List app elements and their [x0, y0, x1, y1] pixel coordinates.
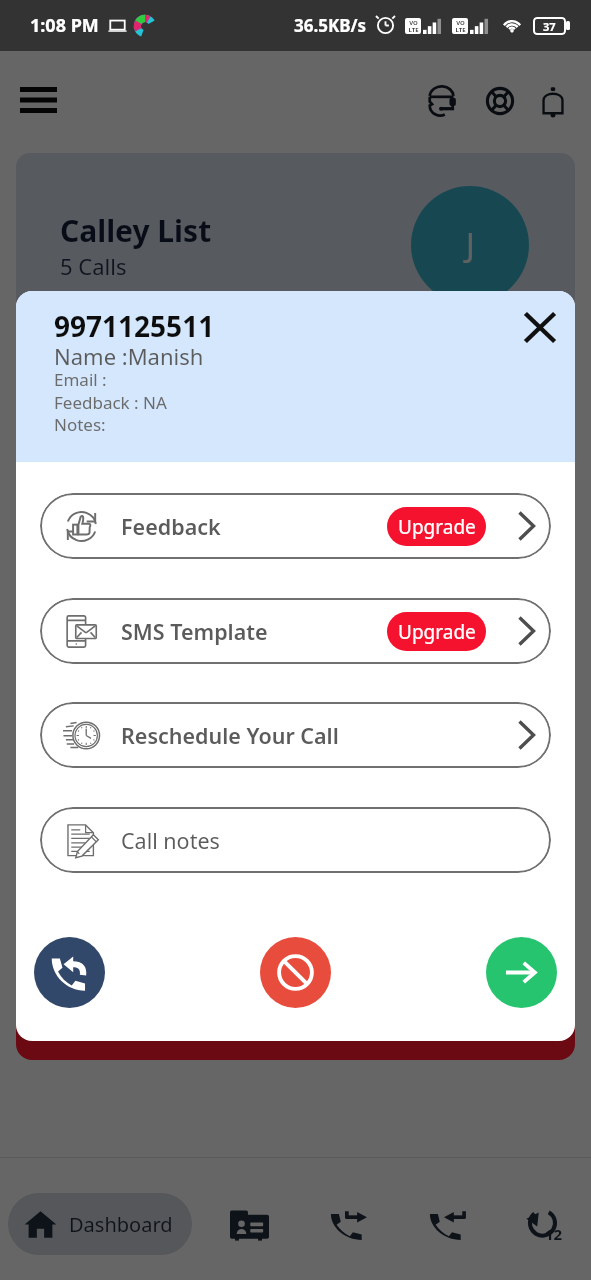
- staticText: Notes:: [54, 413, 106, 436]
- staticText: 37: [543, 19, 556, 34]
- button[interactable]: Incoming calls: [419, 1197, 474, 1252]
- staticText: VO LTE: [408, 19, 419, 34]
- staticText: Calley List: [60, 210, 212, 251]
- staticText: Name :Manish: [54, 341, 204, 371]
- button[interactable]: Feedback: [40, 493, 551, 559]
- staticText: 5 Calls: [60, 251, 127, 281]
- button[interactable]: Help: [474, 75, 526, 127]
- staticText: Call notes: [121, 826, 220, 855]
- button[interactable]: Outgoing calls: [320, 1197, 375, 1252]
- staticText: SMS Template: [121, 617, 268, 646]
- staticText: Feedback : NA: [54, 391, 167, 414]
- staticText: Upgrade: [398, 619, 476, 645]
- staticText: Upgrade: [398, 514, 476, 540]
- button[interactable]: Upgrade: [387, 507, 486, 546]
- button[interactable]: Next call: [486, 937, 557, 1008]
- staticText: Email :: [54, 368, 107, 391]
- button[interactable]: Call back: [34, 937, 105, 1008]
- staticText: J: [466, 223, 475, 267]
- button[interactable]: Call history: [516, 1197, 571, 1252]
- staticText: 36.5KB/s: [294, 14, 367, 37]
- button[interactable]: SMS Template: [40, 598, 551, 664]
- button[interactable]: Notifications: [527, 75, 579, 127]
- button[interactable]: Block: [260, 937, 331, 1008]
- button[interactable]: Reschedule Your Call: [40, 702, 551, 768]
- staticText: 1:08 PM: [30, 13, 99, 38]
- button[interactable]: Add: [486, 1001, 546, 1043]
- staticText: VO LTE: [455, 19, 466, 34]
- staticText: 12: [545, 1224, 563, 1244]
- staticText: Dashboard: [69, 1211, 173, 1238]
- button[interactable]: Call notes: [40, 807, 551, 873]
- button[interactable]: Upgrade: [387, 612, 486, 651]
- staticText: 9971125511: [54, 307, 215, 345]
- button[interactable]: Close: [516, 303, 564, 351]
- staticText: Reschedule Your Call: [121, 721, 339, 750]
- button[interactable]: Menu: [12, 74, 64, 126]
- button[interactable]: Contacts: [222, 1197, 277, 1252]
- staticText: Feedback: [121, 512, 221, 541]
- button[interactable]: Dashboard: [8, 1193, 192, 1255]
- button[interactable]: Support chat: [416, 75, 468, 127]
